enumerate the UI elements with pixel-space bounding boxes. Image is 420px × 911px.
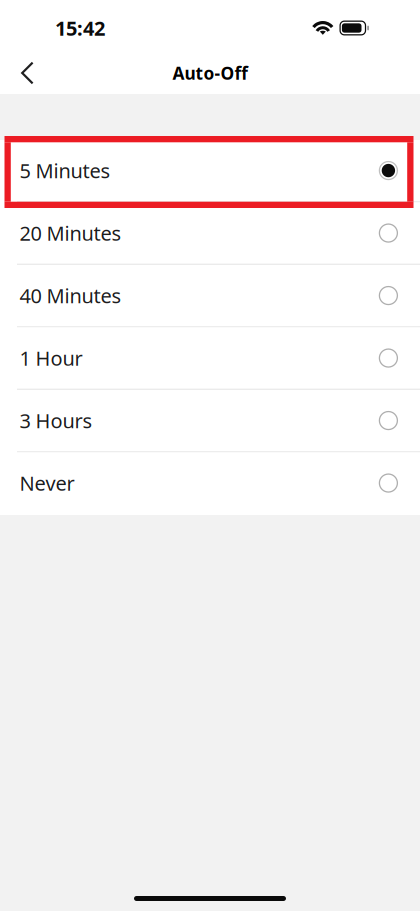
button[interactable]: 5 Minutes [0, 140, 420, 202]
staticText: 3 Hours [19, 407, 92, 434]
button[interactable]: 20 Minutes [0, 202, 420, 265]
staticText: 20 Minutes [19, 220, 121, 246]
staticText: Never [19, 470, 74, 496]
staticText: 40 Minutes [19, 282, 121, 309]
staticText: 1 Hour [19, 345, 82, 371]
staticText: 5 Minutes [19, 157, 110, 184]
button[interactable]: Never [0, 452, 420, 515]
button[interactable]: 1 Hour [0, 327, 420, 390]
staticText: Auto-Off [172, 61, 247, 84]
button[interactable]: Back [0, 48, 49, 94]
button[interactable]: 3 Hours [0, 390, 420, 452]
staticText: 15:42 [55, 15, 105, 41]
button[interactable]: 40 Minutes [0, 265, 420, 327]
